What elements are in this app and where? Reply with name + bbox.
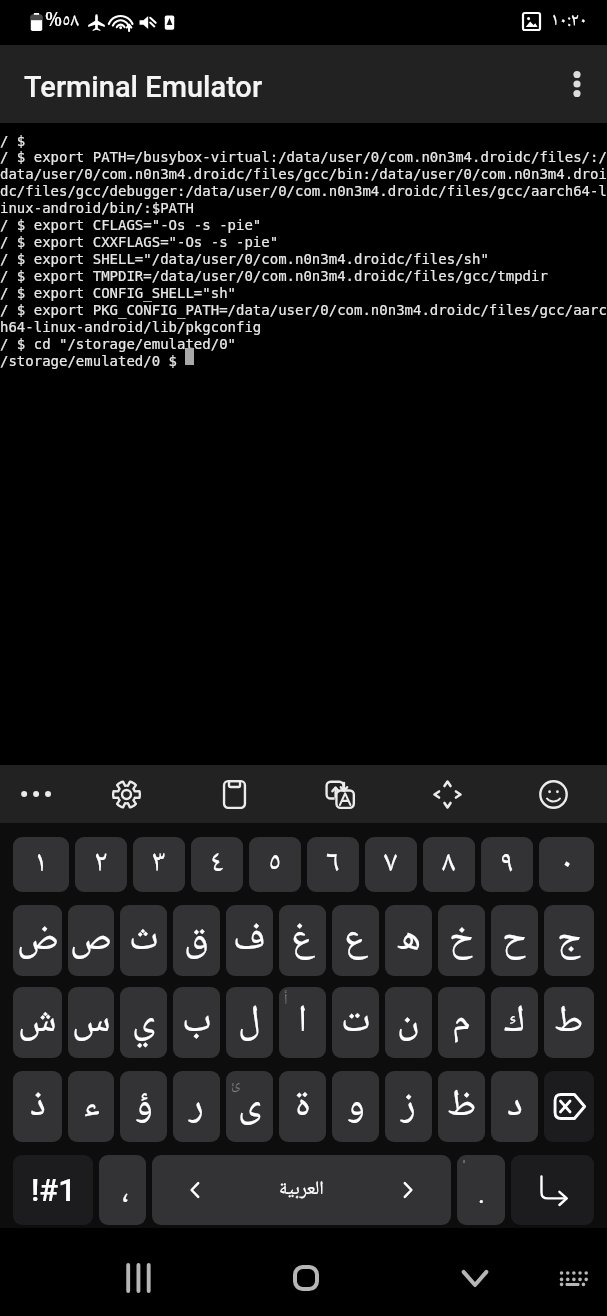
staticText: ه: [397, 908, 421, 973]
button[interactable]: More options: [7, 765, 65, 823]
button[interactable]: Hide keyboard: [442, 1240, 508, 1316]
staticText: و: [347, 1074, 365, 1139]
button[interactable]: Enter: [511, 1155, 594, 1225]
staticText: ٦: [326, 839, 340, 890]
staticText: ٠: [560, 839, 574, 890]
staticText: ٩: [500, 839, 514, 890]
button[interactable]: ف: [226, 905, 273, 976]
button[interactable]: More options: [547, 45, 607, 123]
staticText: ٢: [94, 839, 108, 890]
button[interactable]: ع: [332, 905, 379, 976]
staticText: ٨: [442, 839, 456, 890]
staticText: م: [452, 990, 471, 1055]
button[interactable]: ٩: [481, 837, 533, 892]
staticText: غ: [291, 908, 314, 973]
button[interactable]: ٤: [191, 837, 243, 892]
button[interactable]: ص: [68, 905, 114, 976]
button[interactable]: ط: [544, 987, 594, 1058]
button[interactable]: Recents: [103, 1240, 169, 1316]
staticText: ك: [504, 990, 526, 1055]
staticText: ل: [238, 990, 261, 1055]
staticText: ر: [189, 1074, 204, 1139]
staticText: / $ / $ export PATH=/busybox-virtual:/da…: [0, 133, 607, 369]
button[interactable]: م: [438, 987, 485, 1058]
button[interactable]: ة: [279, 1071, 326, 1142]
button[interactable]: ٦: [307, 837, 359, 892]
staticText: ي: [132, 990, 156, 1055]
staticText: ذ: [30, 1074, 46, 1139]
button[interactable]: ر: [173, 1071, 220, 1142]
button[interactable]: ش: [13, 987, 62, 1058]
button[interactable]: ٠: [539, 837, 594, 892]
button[interactable]: ن: [385, 987, 432, 1058]
button[interactable]: و: [332, 1071, 379, 1142]
button[interactable]: العربية: [152, 1155, 451, 1225]
button[interactable]: ه: [385, 905, 432, 976]
staticText: ض: [17, 908, 59, 973]
button[interactable]: ز: [385, 1071, 432, 1142]
staticText: ش: [18, 990, 57, 1055]
button[interactable]: ٢: [75, 837, 127, 892]
button[interactable]: ٥: [249, 837, 301, 892]
button[interactable]: ل: [226, 987, 273, 1058]
button[interactable]: ٨: [423, 837, 475, 892]
button[interactable]: ج: [544, 905, 594, 976]
staticText: ئ: [231, 1072, 241, 1098]
button[interactable]: ض: [13, 905, 62, 976]
staticText: ف: [233, 908, 266, 973]
button[interactable]: Move cursor: [418, 765, 476, 823]
staticText: ظ: [447, 1074, 477, 1139]
button[interactable]: Home: [273, 1240, 339, 1316]
button[interactable]: غ: [279, 905, 326, 976]
staticText: %٥٨: [45, 6, 80, 38]
button[interactable]: ،: [99, 1155, 146, 1225]
staticText: ن: [397, 990, 420, 1055]
staticText: ة: [295, 1074, 311, 1139]
button[interactable]: Clipboard: [205, 765, 263, 823]
button[interactable]: ح: [491, 905, 538, 976]
staticText: د: [507, 1074, 523, 1139]
staticText: ز: [401, 1074, 416, 1139]
button[interactable]: !#1: [13, 1155, 93, 1225]
button[interactable]: ظ: [438, 1071, 485, 1142]
button[interactable]: ي: [120, 987, 167, 1058]
button[interactable]: ق: [173, 905, 220, 976]
staticText: ع: [344, 908, 367, 973]
button[interactable]: Backspace: [544, 1071, 594, 1142]
staticText: ى: [238, 1074, 262, 1139]
staticText: ت: [341, 990, 371, 1055]
staticText: ٤: [210, 839, 224, 890]
button[interactable]: ٧: [365, 837, 417, 892]
button[interactable]: ٣: [133, 837, 185, 892]
button[interactable]: س: [68, 987, 114, 1058]
staticText: ص: [70, 908, 112, 973]
staticText: Terminal Emulator: [24, 70, 263, 104]
button[interactable]: ب: [173, 987, 220, 1058]
staticText: ق: [184, 908, 209, 973]
button[interactable]: ث: [120, 905, 167, 976]
staticText: س: [72, 990, 111, 1055]
button[interactable]: أ: [279, 987, 326, 1058]
button[interactable]: د: [491, 1071, 538, 1142]
button[interactable]: ك: [491, 987, 538, 1058]
button[interactable]: Settings: [97, 765, 155, 823]
staticText: ط: [554, 990, 584, 1055]
button[interactable]: ؤ: [120, 1071, 167, 1142]
button[interactable]: خ: [438, 905, 485, 976]
staticText: ١٠:٢٠: [551, 6, 588, 37]
staticText: العربية: [279, 1174, 324, 1206]
staticText: خ: [449, 908, 474, 973]
staticText: !#1: [31, 1172, 76, 1208]
button[interactable]: Emoji: [524, 765, 582, 823]
button[interactable]: ذ: [13, 1071, 62, 1142]
staticText: ،: [122, 1166, 129, 1220]
button[interactable]: ت: [332, 987, 379, 1058]
button[interactable]: ء: [68, 1071, 114, 1142]
button[interactable]: Switch keyboard: [539, 1240, 605, 1316]
button[interactable]: ئ: [226, 1071, 273, 1142]
staticText: ح: [502, 908, 527, 973]
button[interactable]: ْ: [457, 1155, 505, 1225]
staticText: ب: [182, 990, 212, 1055]
button[interactable]: ١: [13, 837, 69, 892]
button[interactable]: Translate: [311, 765, 369, 823]
